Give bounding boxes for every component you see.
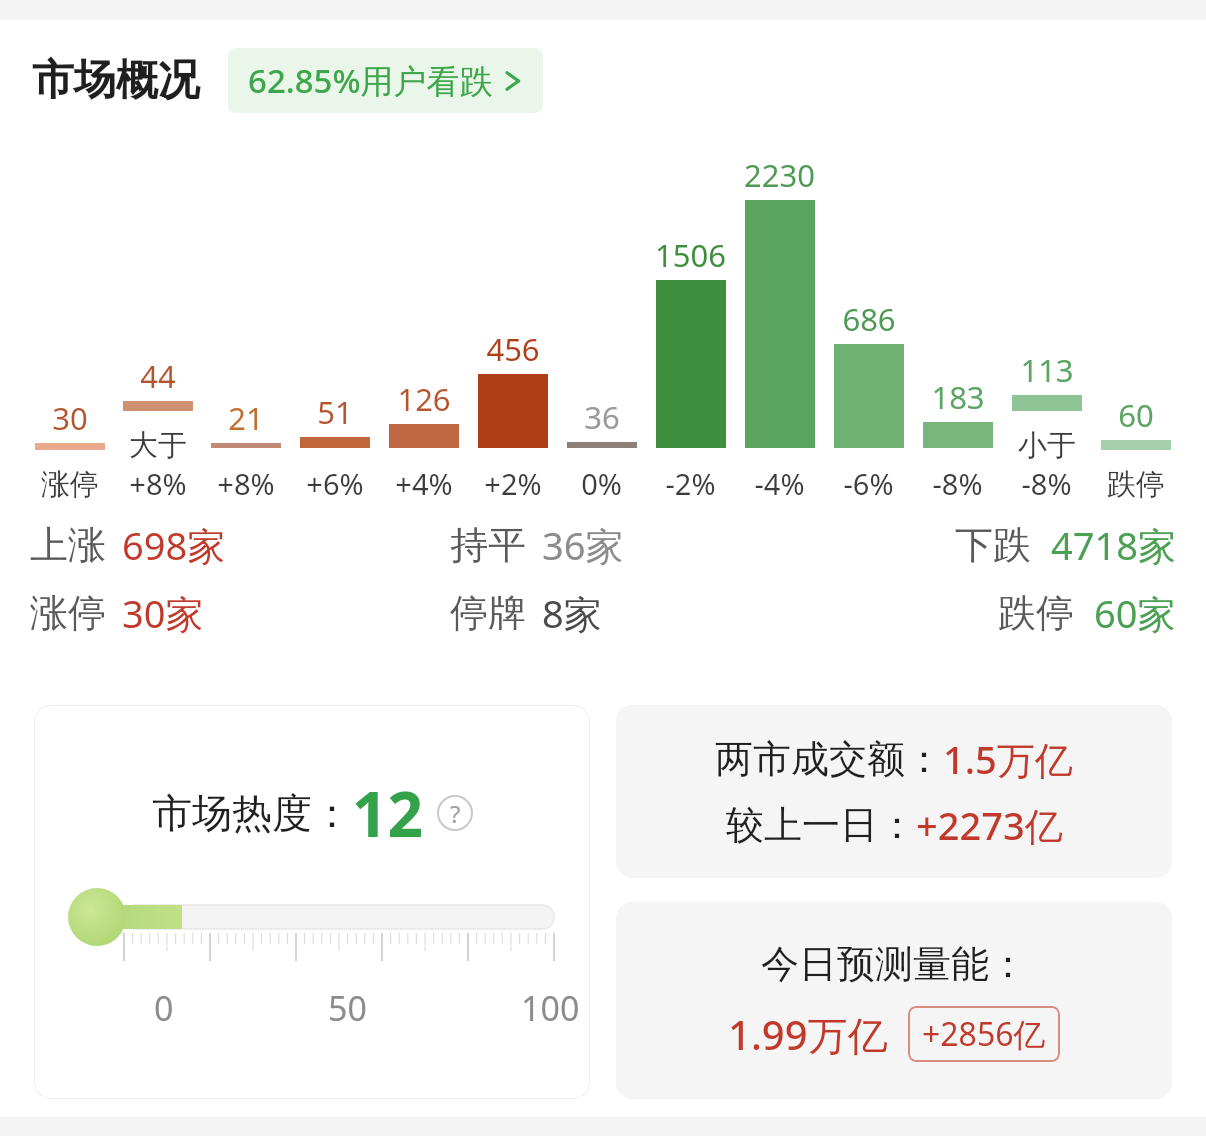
staticText: 686	[842, 298, 896, 340]
staticText: 1506	[655, 234, 726, 276]
staticText: 跌停	[998, 589, 1074, 637]
staticText: 183	[931, 376, 985, 418]
staticText: 44	[140, 355, 176, 397]
staticText: 51	[317, 391, 353, 433]
staticText: -2%	[665, 464, 716, 503]
staticText: 停牌	[450, 589, 526, 637]
staticText: +6%	[306, 464, 364, 503]
staticText: 涨停	[30, 589, 106, 637]
staticText: 30家	[122, 587, 204, 639]
staticText: 60	[1118, 394, 1154, 436]
staticText: 小于	[1018, 427, 1076, 464]
staticText: 大于	[129, 427, 187, 464]
staticText: 上涨	[30, 521, 106, 569]
staticText: 今日预测量能：	[761, 940, 1027, 988]
staticText: 126	[397, 378, 451, 420]
staticText: 持平	[450, 521, 526, 569]
staticText: 1.5万亿	[943, 733, 1073, 785]
staticText: +2273亿	[916, 799, 1063, 851]
staticText: -8%	[932, 464, 983, 503]
staticText: 60家	[1094, 587, 1176, 639]
staticText: +2856亿	[922, 1012, 1046, 1056]
staticText: 下跌	[955, 521, 1031, 569]
staticText: 4718家	[1051, 519, 1176, 571]
staticText: 0	[154, 985, 174, 1031]
staticText: 较上一日：	[726, 801, 916, 849]
staticText: 36	[584, 396, 620, 438]
staticText: ?	[450, 797, 461, 830]
staticText: 跌停	[1107, 466, 1165, 503]
staticText: 市场概况	[32, 54, 200, 107]
staticText: 62.85%用户看跌	[248, 58, 493, 103]
staticText: 涨停	[41, 466, 99, 503]
staticText: 30	[52, 397, 88, 439]
staticText: 两市成交额：	[715, 735, 943, 783]
button[interactable]: 市场热度：	[34, 705, 590, 1099]
staticText: -6%	[843, 464, 894, 503]
staticText: 12	[352, 771, 423, 855]
staticText: 0%	[581, 464, 622, 503]
staticText: 113	[1020, 349, 1074, 391]
staticText: 2230	[744, 154, 815, 196]
staticText: 1.99万亿	[728, 1007, 888, 1062]
button[interactable]: 今日预测量能：	[616, 902, 1172, 1099]
staticText: 8家	[542, 587, 602, 639]
staticText: 456	[486, 328, 540, 370]
staticText: +8%	[217, 464, 275, 503]
staticText: +4%	[395, 464, 453, 503]
staticText: +8%	[129, 464, 187, 503]
button[interactable]: 62.85%用户看跌	[228, 48, 543, 113]
button[interactable]: 帮助	[437, 795, 473, 831]
staticText: -4%	[754, 464, 805, 503]
staticText: 21	[228, 397, 264, 439]
staticText: 100	[521, 985, 580, 1031]
button[interactable]: 两市成交额：	[616, 705, 1172, 878]
staticText: +2%	[484, 464, 542, 503]
staticText: 市场热度：	[152, 788, 352, 838]
staticText: 698家	[122, 519, 226, 571]
staticText: -8%	[1021, 464, 1072, 503]
staticText: 50	[328, 985, 367, 1031]
staticText: 36家	[542, 519, 624, 571]
